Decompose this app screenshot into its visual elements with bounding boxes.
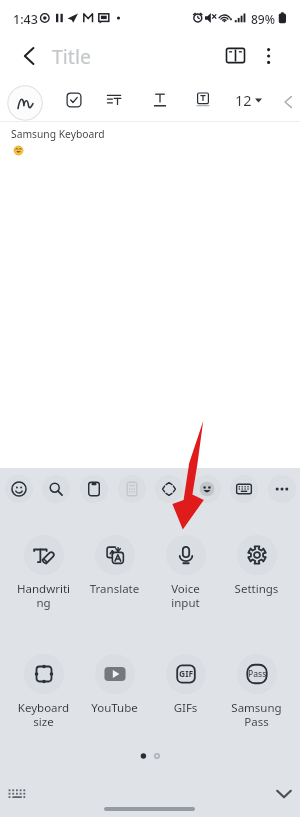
button[interactable]: Show keyboard bbox=[1, 782, 32, 806]
button[interactable]: GIF bbox=[150, 654, 221, 718]
button[interactable]: Keyboard modes bbox=[230, 475, 258, 503]
staticText: YouTube bbox=[86, 700, 143, 716]
button[interactable]: Search bbox=[42, 475, 70, 503]
staticText: Samsung Keyboard bbox=[11, 127, 105, 141]
button[interactable]: Paragraph style bbox=[100, 86, 128, 114]
button[interactable]: Stickers bbox=[193, 475, 221, 503]
button[interactable]: Translate bbox=[79, 535, 150, 599]
staticText: Title bbox=[52, 43, 91, 70]
staticText: Samsung Pass bbox=[228, 700, 285, 729]
staticText: GIFs bbox=[157, 700, 214, 716]
staticText: 1:43 bbox=[13, 11, 38, 28]
staticText: 12 bbox=[235, 90, 252, 110]
staticText: Translate bbox=[86, 581, 143, 597]
button[interactable]: Settings bbox=[221, 535, 292, 599]
button[interactable]: Emoji bbox=[5, 475, 33, 503]
button[interactable]: Collapse toolbar bbox=[275, 89, 300, 114]
button[interactable]: Pass bbox=[221, 654, 292, 718]
button[interactable]: Checklist bbox=[60, 86, 88, 114]
button[interactable]: Hide keyboard bbox=[268, 782, 299, 806]
button[interactable]: Text box bbox=[189, 86, 217, 114]
button[interactable]: More options bbox=[268, 475, 296, 503]
button[interactable]: Keyboard size bbox=[8, 654, 79, 718]
button[interactable]: Reading mode bbox=[223, 41, 253, 71]
staticText: Handwriting bbox=[15, 581, 72, 610]
button[interactable]: Text editing bbox=[118, 475, 146, 503]
staticText: Pass bbox=[248, 668, 267, 680]
button[interactable]: 12 bbox=[231, 89, 266, 111]
button[interactable]: Pen bbox=[7, 85, 43, 121]
button[interactable]: Handwriting bbox=[8, 535, 79, 599]
button[interactable]: Clipboard bbox=[80, 475, 108, 503]
button[interactable]: Font bbox=[146, 86, 174, 114]
staticText: Keyboard size bbox=[15, 700, 72, 729]
button[interactable]: YouTube bbox=[79, 654, 150, 718]
button[interactable]: Move keyboard bbox=[155, 475, 183, 503]
button[interactable]: Back bbox=[14, 41, 44, 71]
staticText: 89% bbox=[251, 11, 275, 27]
staticText: Settings bbox=[228, 581, 285, 597]
staticText: GIF bbox=[179, 668, 194, 680]
staticText: Voice input bbox=[157, 581, 214, 610]
button[interactable]: Voice input bbox=[150, 535, 221, 599]
button[interactable]: More options bbox=[254, 41, 284, 71]
